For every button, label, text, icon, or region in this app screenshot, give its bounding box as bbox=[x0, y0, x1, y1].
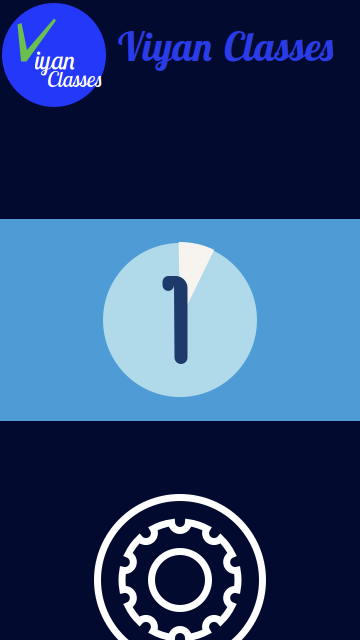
staticText: Classes bbox=[47, 66, 103, 92]
button[interactable]: Settings bbox=[94, 494, 266, 640]
staticText: iyan bbox=[34, 44, 75, 76]
button[interactable]: Viyan Classes bbox=[116, 21, 336, 71]
staticText: Viyan Classes bbox=[116, 21, 336, 71]
